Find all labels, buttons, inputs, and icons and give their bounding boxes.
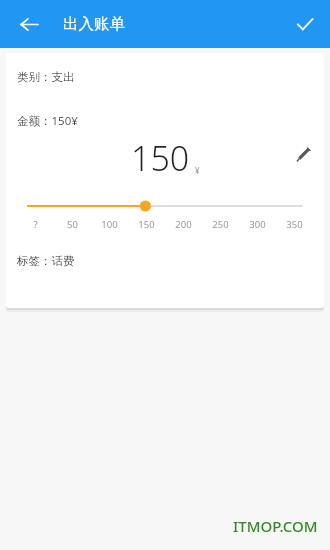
staticText: 200 [175, 218, 192, 231]
button[interactable]: Edit amount [288, 139, 318, 169]
staticText: 350 [286, 218, 303, 231]
button[interactable]: 标签：话费 [6, 254, 324, 268]
staticText: 类别：支出 [17, 70, 75, 84]
staticText: 300 [249, 218, 266, 231]
staticText: 50 [67, 218, 78, 231]
staticText: ? [33, 218, 38, 231]
staticText: 100 [101, 218, 118, 231]
staticText: 出入账单 [63, 14, 125, 34]
staticText: 250 [212, 218, 229, 231]
button[interactable]: 金额：150¥ [6, 113, 324, 129]
staticText: 标签：话费 [17, 254, 75, 268]
button[interactable]: Back [12, 7, 46, 41]
staticText: 150 [131, 135, 190, 181]
staticText: 金额：150¥ [17, 113, 78, 129]
button[interactable]: 类别：支出 [6, 70, 324, 84]
staticText: ITMOP.COM [233, 516, 318, 536]
staticText: 150 [138, 218, 155, 231]
button[interactable]: Amount slider [6, 196, 324, 216]
staticText: ¥ [195, 165, 200, 176]
button[interactable]: Confirm [288, 7, 322, 41]
